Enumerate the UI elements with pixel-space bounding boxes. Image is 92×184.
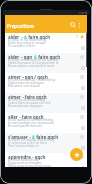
button[interactable]: aider [5, 33, 87, 53]
staticText: - [20, 34, 24, 40]
button[interactable]: Favourite [79, 34, 84, 39]
staticText: apprendre [8, 154, 31, 160]
staticText: - qqch [31, 154, 46, 160]
staticText: Prepositions [7, 23, 35, 29]
button[interactable]: Details [80, 45, 85, 50]
staticText: to be going to do something [8, 117, 54, 122]
staticText: aimer [8, 94, 21, 100]
button[interactable]: Details [80, 125, 85, 130]
button[interactable]: Favourite [79, 74, 84, 79]
button[interactable]: aimer [5, 73, 87, 93]
button[interactable]: Details [80, 85, 85, 90]
staticText: J'aime faire du piano le soir [8, 100, 51, 105]
button[interactable]: Details [80, 165, 85, 170]
staticText: à [24, 34, 27, 40]
staticText: Je m'amuse à lire ce livre [8, 140, 47, 145]
button[interactable]: Favourite [79, 134, 84, 139]
staticText: aller [8, 114, 18, 120]
staticText: J'aide ma sœur à comprendre le [8, 60, 59, 65]
staticText: J'aime bien la musique [8, 80, 44, 85]
staticText: to like somebody / something [8, 77, 56, 82]
button[interactable]: Details [80, 105, 85, 110]
staticText: J'aide ma mère à ranger [8, 40, 46, 45]
staticText: to like to do something [8, 97, 45, 102]
staticText: to help somebody to do someth [8, 57, 59, 62]
button[interactable]: apprendre [5, 153, 87, 167]
button[interactable]: Add to favourites [70, 148, 83, 161]
button[interactable]: Favourite [79, 114, 84, 119]
button[interactable]: aider [5, 53, 87, 73]
button[interactable]: aller [5, 113, 87, 133]
button[interactable]: Details [80, 145, 85, 150]
staticText: to help to do something [8, 37, 47, 42]
staticText: aider [8, 54, 20, 60]
staticText: - faire qqch [21, 94, 47, 100]
staticText: aider [8, 34, 20, 40]
button[interactable]: More options [75, 21, 83, 29]
staticText: faire qqch [37, 54, 61, 60]
staticText: J'apprends le français [8, 160, 42, 165]
staticText: à [32, 134, 35, 140]
button[interactable]: Favourite [79, 94, 84, 99]
staticText: Ils vont partir demain [8, 123, 43, 128]
staticText: s'amuser [8, 134, 28, 140]
staticText: - qqn / qqch [21, 74, 48, 80]
button[interactable]: s'amuser [5, 133, 87, 153]
staticText: Tu m'aides à finir [8, 43, 35, 48]
staticText: - qqn [20, 54, 34, 60]
staticText: On s'amuse bien ici [8, 143, 39, 148]
staticText: Nous aidons nos amis à venir [8, 63, 55, 68]
staticText: Nous aimons voyager [8, 103, 43, 108]
button[interactable]: aimer [5, 93, 87, 113]
staticText: aimer [8, 74, 21, 80]
staticText: to learn something [8, 157, 39, 162]
staticText: Elle aime son travail [8, 83, 40, 88]
staticText: Nous apprenons beaucoup [8, 163, 52, 168]
staticText: faire qqch [35, 134, 59, 140]
staticText: à [34, 54, 37, 60]
staticText: - [28, 134, 32, 140]
button[interactable]: Favourite [79, 54, 84, 59]
staticText: Je vais manger au restaurant [8, 120, 54, 125]
button[interactable]: Favourite [79, 154, 84, 159]
button[interactable]: Details [80, 65, 85, 70]
staticText: 1 [76, 34, 78, 39]
button[interactable]: Search [68, 20, 77, 29]
staticText: - faire qqch [18, 114, 44, 120]
staticText: faire qqch [27, 34, 51, 40]
staticText: to have fun doing something [8, 137, 55, 142]
